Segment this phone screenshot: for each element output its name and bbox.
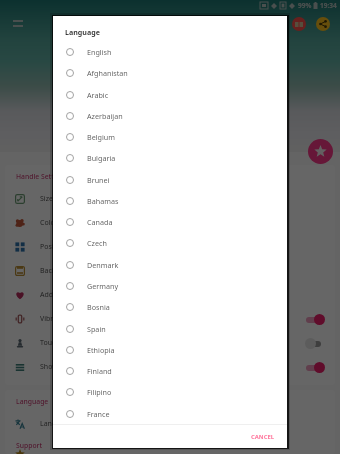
staticText: Denmark — [87, 260, 119, 270]
button[interactable]: Germany — [53, 275, 287, 296]
button[interactable]: Touch Sound — [5, 331, 335, 355]
button[interactable]: Finland — [53, 360, 287, 381]
button[interactable]: Spain — [53, 318, 287, 339]
staticText: Azerbaijan — [87, 111, 123, 121]
staticText: Background — [40, 266, 80, 276]
staticText: Czech — [87, 238, 107, 248]
staticText: Ethiopia — [87, 345, 115, 355]
staticText: CANCEL — [251, 433, 275, 441]
button[interactable]: Bahamas — [53, 190, 287, 211]
button[interactable]: Store — [292, 17, 306, 31]
button[interactable]: Show Handle — [5, 355, 335, 379]
button[interactable]: Afghanistan — [53, 62, 287, 83]
button[interactable]: Canada — [53, 211, 287, 232]
staticText: Afghanistan — [87, 68, 128, 78]
button[interactable]: France — [53, 403, 287, 424]
button[interactable]: Position — [5, 235, 335, 259]
staticText: Size — [40, 194, 53, 204]
staticText: Touch Sound — [40, 338, 83, 348]
staticText: Language — [65, 27, 100, 37]
button[interactable]: Size — [5, 187, 335, 211]
staticText: Position — [40, 242, 67, 252]
button[interactable]: Brunei — [53, 169, 287, 190]
staticText: Germany — [87, 281, 119, 291]
staticText: Arabic — [87, 90, 109, 100]
staticText: Belgium — [87, 132, 116, 142]
button[interactable]: Share — [316, 17, 330, 31]
staticText: Vibration — [40, 314, 70, 324]
staticText: Canada — [87, 217, 113, 227]
staticText: Bulgaria — [87, 153, 116, 163]
staticText: English — [87, 47, 112, 57]
staticText: Finland — [87, 366, 112, 376]
button[interactable]: Color — [5, 211, 335, 235]
button[interactable]: Belgium — [53, 126, 287, 147]
staticText: Language — [40, 419, 73, 429]
button[interactable]: Open navigation menu — [8, 14, 28, 34]
button[interactable]: Add favourite — [308, 139, 333, 164]
staticText: 99% — [298, 1, 312, 10]
button[interactable]: CANCEL — [239, 428, 287, 446]
staticText: Spain — [87, 324, 106, 334]
button[interactable]: Bosnia — [53, 296, 287, 317]
button[interactable]: Bulgaria — [53, 147, 287, 168]
button[interactable]: Denmark — [53, 254, 287, 275]
staticText: Additional — [40, 290, 74, 300]
button[interactable]: English — [53, 41, 287, 62]
button[interactable]: Azerbaijan — [53, 105, 287, 126]
staticText: Show Handle — [40, 362, 84, 372]
staticText: Bosnia — [87, 302, 110, 312]
staticText: Color — [40, 218, 58, 228]
staticText: France — [87, 409, 110, 419]
button[interactable]: Additional — [5, 283, 335, 307]
button[interactable]: Background — [5, 259, 335, 283]
button[interactable]: Language — [5, 412, 335, 436]
button[interactable]: Ethiopia — [53, 339, 287, 360]
button[interactable]: Czech — [53, 232, 287, 253]
staticText: Language — [16, 397, 49, 406]
staticText: Filipino — [87, 387, 112, 397]
button[interactable]: Vibration — [5, 307, 335, 331]
button[interactable]: Filipino — [53, 381, 287, 402]
staticText: Support — [16, 441, 43, 450]
staticText: Bahamas — [87, 196, 119, 206]
button[interactable]: Arabic — [53, 84, 287, 105]
staticText: 19:34 — [320, 1, 337, 10]
staticText: Handle Settings — [16, 172, 68, 181]
staticText: Brunei — [87, 175, 110, 185]
